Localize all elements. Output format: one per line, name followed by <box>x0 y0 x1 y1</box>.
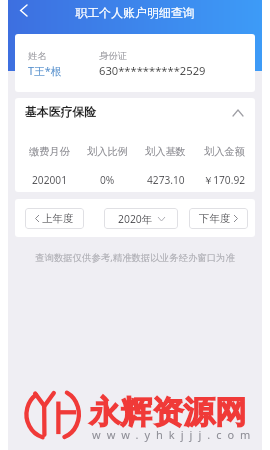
staticText: 630**********2529 <box>99 63 206 78</box>
staticText: www.yhkjjj.com <box>92 427 257 442</box>
staticText: 姓名 <box>28 50 47 62</box>
staticText: T王*根 <box>28 63 62 78</box>
staticText: 基本医疗保险 <box>25 105 96 120</box>
staticText: 查询数据仅供参考,精准数据以业务经办窗口为准 <box>8 251 262 264</box>
button[interactable]: 基本医疗保险 <box>15 98 255 127</box>
button[interactable]: 2020年 <box>104 208 178 229</box>
staticText: 2020年 <box>118 212 153 226</box>
staticText: 202001 <box>32 173 67 187</box>
staticText: 缴费月份 <box>29 145 70 158</box>
staticText: 0% <box>100 173 115 187</box>
button[interactable]: 下年度 <box>189 208 248 229</box>
staticText: ￥170.92 <box>203 173 246 187</box>
button[interactable]: Back <box>9 0 38 25</box>
staticText: 职工个人账户明细查询 <box>8 6 262 21</box>
staticText: 身份证 <box>99 50 128 62</box>
staticText: 划入金额 <box>204 145 245 158</box>
staticText: 划入比例 <box>87 145 128 158</box>
staticText: 永辉资源网 <box>89 393 247 433</box>
staticText: 下年度 <box>199 212 231 225</box>
button[interactable]: 上年度 <box>25 208 84 229</box>
staticText: 划入基数 <box>145 145 186 158</box>
staticText: 4273.10 <box>147 173 185 187</box>
staticText: 上年度 <box>42 212 74 225</box>
